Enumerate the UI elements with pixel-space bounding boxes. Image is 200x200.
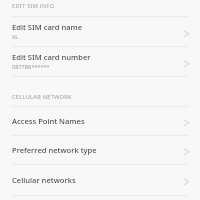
other: Open bbox=[182, 26, 194, 38]
button[interactable]: Preferred network type bbox=[0, 136, 200, 164]
other: Open bbox=[182, 174, 194, 186]
staticText: Preferred network type bbox=[12, 145, 97, 155]
button[interactable]: Edit SIM card number bbox=[0, 47, 200, 76]
staticText: Cellular networks bbox=[12, 175, 76, 185]
other: Open bbox=[182, 115, 194, 127]
staticText: 087786****** bbox=[12, 63, 50, 71]
button[interactable]: Access Point Names bbox=[0, 107, 200, 135]
staticText: EDIT SIM INFO bbox=[12, 2, 55, 10]
staticText: CELLULAR NETWORK bbox=[12, 93, 72, 101]
button[interactable]: Cellular networks bbox=[0, 165, 200, 195]
staticText: Edit SIM card number bbox=[12, 52, 91, 62]
other: Open bbox=[182, 144, 194, 156]
staticText: Edit SIM card name bbox=[12, 22, 83, 32]
staticText: Access Point Names bbox=[12, 116, 85, 126]
button[interactable]: Edit SIM card name bbox=[0, 17, 200, 46]
other: Open bbox=[182, 56, 194, 68]
staticText: XL bbox=[12, 33, 19, 41]
